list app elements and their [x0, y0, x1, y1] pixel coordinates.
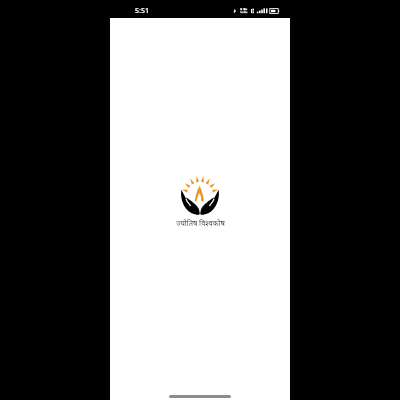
staticText: 5:51 — [135, 6, 149, 16]
staticText: ज्योतिष विश्वकोष — [176, 218, 225, 228]
button[interactable]: Jyotish Vishwakosh logo — [150, 171, 250, 225]
